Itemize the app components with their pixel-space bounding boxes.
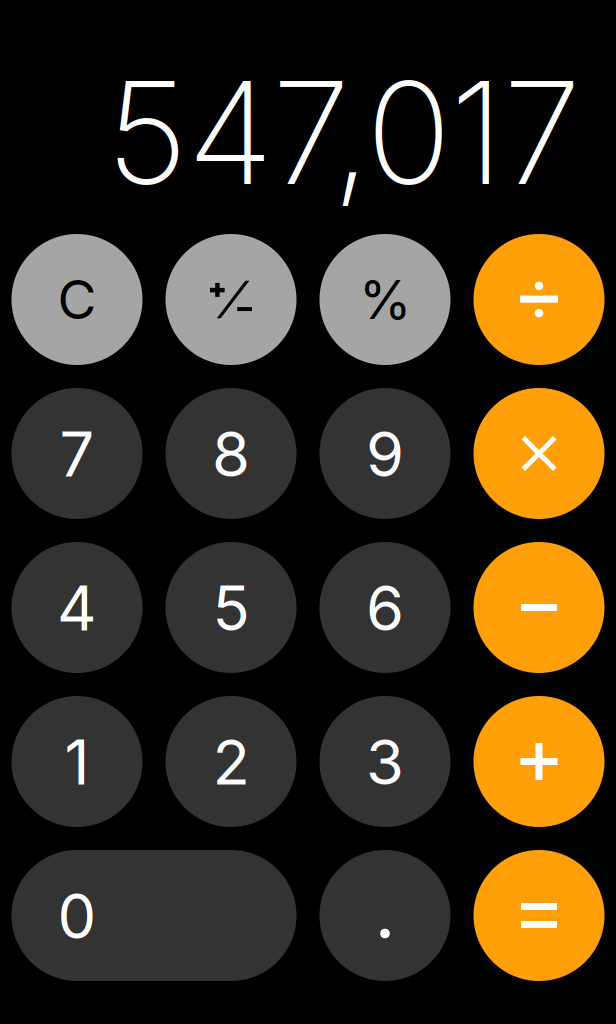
button[interactable]: 3 [319, 696, 450, 827]
button[interactable]: 7 [11, 388, 142, 519]
button[interactable]: 8 [165, 388, 296, 519]
staticText: 0 [57, 879, 96, 953]
button[interactable]: Subtract [473, 542, 604, 673]
button[interactable]: Decimal point [319, 850, 450, 981]
button[interactable]: Plus minus [165, 234, 296, 365]
staticText: 8 [212, 417, 250, 491]
button[interactable]: 5 [165, 542, 296, 673]
staticText: 4 [57, 571, 97, 645]
staticText: 2 [212, 725, 249, 799]
button[interactable]: 9 [319, 388, 450, 519]
staticText: 3 [366, 725, 404, 799]
button[interactable]: 0 [11, 850, 296, 981]
button[interactable]: 2 [165, 696, 296, 827]
button[interactable]: 4 [11, 542, 142, 673]
staticText: C [57, 267, 96, 332]
staticText: 6 [366, 571, 404, 645]
staticText: 9 [366, 417, 404, 491]
staticText: 547,017 [106, 47, 581, 218]
button[interactable]: Divide [473, 234, 604, 365]
button[interactable]: Percent [319, 234, 450, 365]
staticText: 1 [64, 725, 89, 799]
staticText: 5 [212, 571, 249, 645]
staticText: % [359, 267, 411, 332]
staticText: 7 [59, 417, 94, 491]
button[interactable]: Clear [11, 234, 142, 365]
button[interactable]: Add [473, 696, 604, 827]
button[interactable]: Equals [473, 850, 604, 981]
button[interactable]: 1 [11, 696, 142, 827]
button[interactable]: 6 [319, 542, 450, 673]
button[interactable]: Multiply [473, 388, 604, 519]
